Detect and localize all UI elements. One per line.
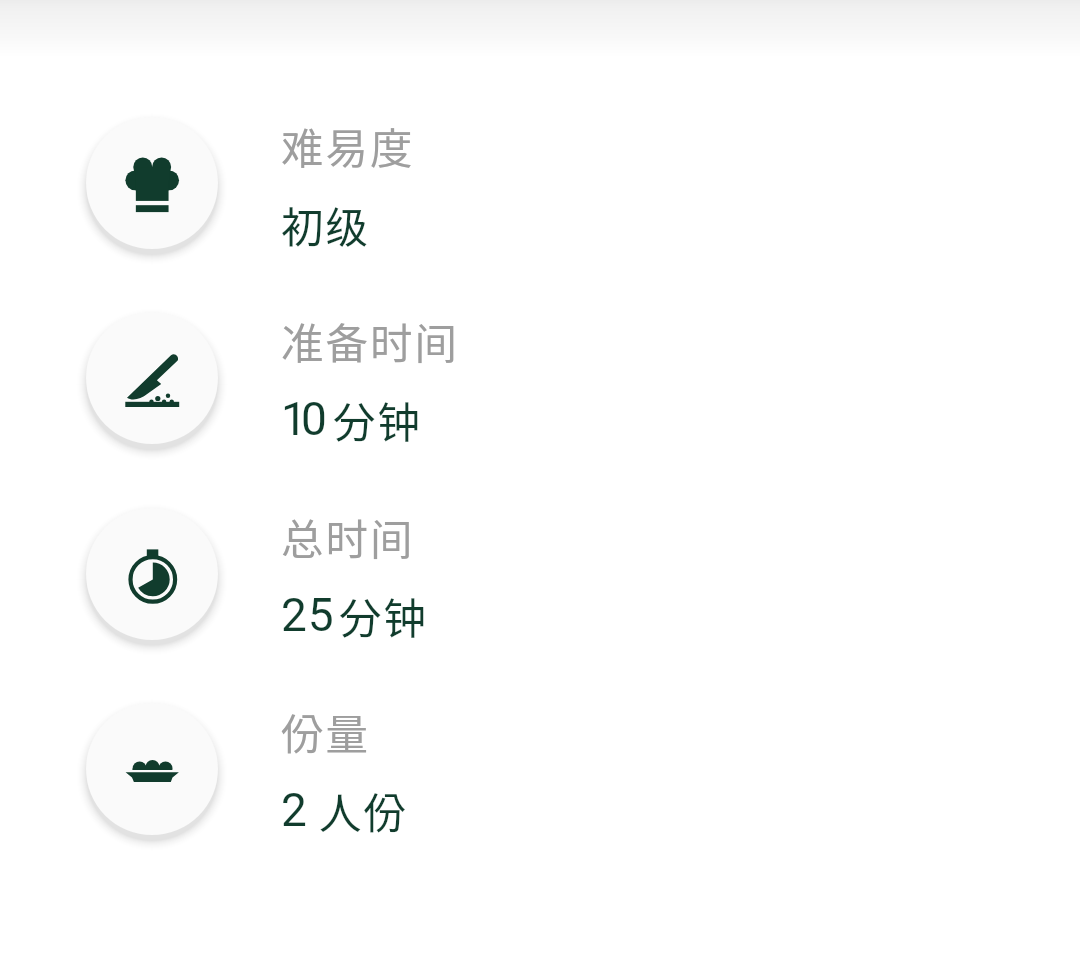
staticText: 准备时间	[281, 310, 460, 372]
staticText: 1	[281, 392, 308, 446]
other: 份量	[86, 703, 218, 835]
other: 准备时间	[86, 312, 218, 444]
button[interactable]: 总时间	[0, 508, 1080, 649]
button[interactable]: 难易度	[0, 117, 1080, 258]
button[interactable]: 份量	[0, 703, 1080, 844]
staticText: 难易度	[281, 115, 415, 177]
staticText: 总时间	[281, 506, 415, 568]
staticText: 2	[281, 783, 308, 837]
staticText: 份量	[281, 701, 371, 763]
staticText: 25	[281, 588, 335, 642]
button[interactable]: 准备时间	[0, 312, 1080, 453]
other: 难易度	[86, 117, 218, 249]
staticText: 分钟	[333, 389, 423, 451]
other: 总时间	[86, 508, 218, 640]
staticText: 初级	[281, 194, 371, 256]
staticText: 人份	[319, 780, 409, 842]
staticText: 分钟	[339, 585, 429, 647]
staticText: 0	[301, 392, 328, 446]
